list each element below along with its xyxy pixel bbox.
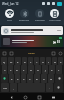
button[interactable]: , [10, 83, 17, 92]
staticText: C [23, 77, 25, 80]
staticText: O [54, 60, 56, 63]
staticText: Y [36, 60, 38, 63]
staticText: G [30, 68, 32, 71]
button[interactable]: O [52, 57, 57, 65]
staticText: N [43, 77, 45, 80]
button[interactable]: Screenshot [50, 94, 56, 100]
button[interactable]: V [27, 74, 33, 83]
button[interactable]: M [48, 74, 54, 83]
staticText: M [50, 77, 53, 80]
staticText: X [17, 77, 19, 80]
staticText: V [29, 77, 31, 80]
staticText: Flashlight [35, 19, 45, 22]
button[interactable]: . [46, 83, 53, 92]
staticText: W [10, 60, 13, 63]
button[interactable]: B [34, 74, 40, 83]
button[interactable]: Play [56, 39, 61, 44]
staticText: Q [3, 60, 5, 63]
staticText: L [58, 68, 60, 71]
staticText: R [24, 60, 26, 63]
button[interactable]: H [35, 65, 41, 74]
button[interactable]: Q [1, 57, 7, 65]
button[interactable]: Previous [1, 36, 63, 47]
staticText: P [60, 60, 62, 63]
button[interactable]: F [21, 65, 27, 74]
staticText: H [37, 68, 39, 71]
button[interactable]: N [41, 74, 47, 83]
button[interactable]: U [40, 57, 45, 65]
button[interactable]: Auto-rotate [48, 8, 61, 23]
staticText: F [23, 68, 25, 71]
button[interactable]: P [58, 57, 63, 65]
staticText: U [42, 60, 44, 63]
button[interactable]: R [22, 57, 27, 65]
button[interactable]: L [56, 65, 62, 74]
button[interactable]: E [15, 57, 21, 65]
button[interactable]: J [42, 65, 48, 74]
button[interactable]: Back [8, 94, 14, 100]
button[interactable]: Shift [1, 74, 8, 83]
button[interactable]: Backspace [55, 74, 63, 83]
staticText: E [17, 60, 19, 63]
staticText: D [16, 68, 18, 71]
button[interactable]: Recents [36, 94, 42, 100]
staticText: A [4, 68, 6, 71]
button[interactable]: Emoji [2, 51, 6, 55]
button[interactable]: Enter [54, 83, 63, 92]
button[interactable]: T [28, 57, 33, 65]
staticText: Wed, Jun 12 [2, 2, 19, 6]
button[interactable]: Y [34, 57, 39, 65]
button[interactable]: Home [22, 94, 28, 100]
button[interactable] [1, 26, 63, 35]
button[interactable]: I [46, 57, 51, 65]
button[interactable]: Bluetooth [18, 8, 31, 23]
button[interactable]: W [8, 57, 14, 65]
button[interactable]: Settings [58, 51, 62, 55]
button[interactable]: S [8, 65, 13, 74]
staticText: T [30, 60, 32, 63]
staticText: . [49, 86, 50, 89]
staticText: J [45, 68, 46, 71]
button[interactable]: G [28, 65, 34, 74]
button[interactable]: Battery [57, 2, 62, 6]
button[interactable]: ?123 [1, 83, 9, 92]
staticText: K [51, 68, 53, 71]
button[interactable]: Flashlight [33, 8, 46, 23]
button[interactable]: D [14, 65, 20, 74]
button[interactable]: K [49, 65, 55, 74]
staticText: ?123 [3, 87, 7, 89]
staticText: Token [28, 51, 35, 54]
button[interactable]: Wi-Fi [3, 8, 16, 23]
staticText: Z [11, 77, 13, 80]
button[interactable]: Clipboard [51, 51, 55, 55]
button[interactable]: A [2, 65, 7, 74]
button[interactable]: GIF [9, 51, 13, 55]
button[interactable]: Z [9, 74, 14, 83]
staticText: Auto-rotate [49, 19, 61, 22]
button[interactable]: Previous [52, 40, 56, 44]
staticText: Wi-Fi [7, 19, 13, 22]
staticText: I [48, 60, 49, 63]
button[interactable]: C [21, 74, 26, 83]
staticText: S [10, 68, 12, 71]
staticText: Bluetooth [19, 19, 30, 22]
staticText: B [36, 77, 38, 80]
button[interactable]: X [15, 74, 20, 83]
